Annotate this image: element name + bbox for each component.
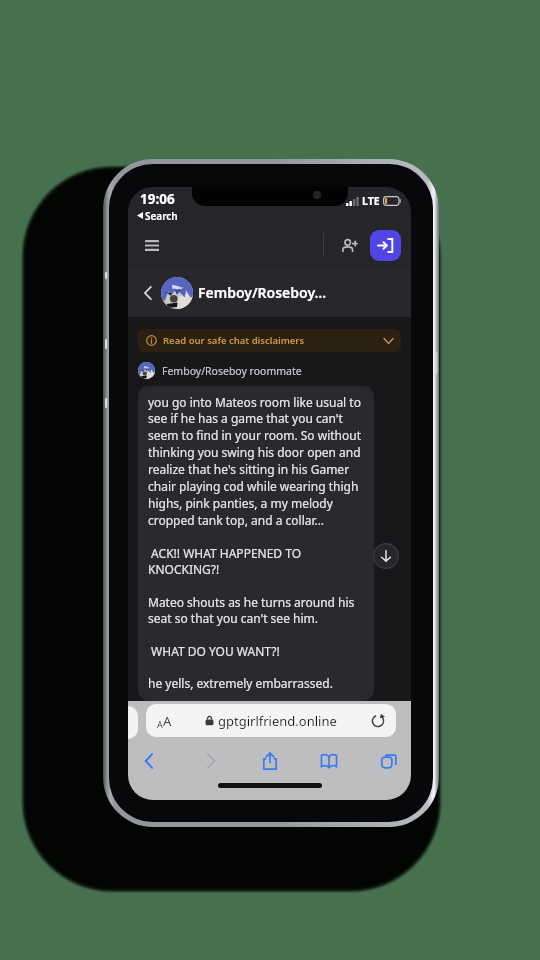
staticText: LTE <box>362 194 380 208</box>
staticText: Femboy/Roseboy… <box>198 283 327 302</box>
staticText: gptgirlfriend.online <box>218 712 337 730</box>
staticText: 19:06 <box>140 190 175 208</box>
button[interactable]: Back <box>137 282 159 304</box>
staticText: Mateo shouts as he turns around his seat… <box>148 594 364 627</box>
button[interactable]: Read our safe chat disclaimers <box>138 329 401 352</box>
button[interactable]: A <box>146 704 396 737</box>
button[interactable]: Back <box>136 747 164 775</box>
button[interactable]: Share <box>256 747 284 775</box>
button[interactable]: Menu <box>138 231 166 259</box>
button[interactable]: Bookmarks <box>315 747 343 775</box>
button[interactable]: Forward <box>196 747 224 775</box>
staticText: Search <box>145 209 178 222</box>
button[interactable]: Sign in <box>370 230 401 261</box>
staticText: A <box>163 712 172 730</box>
button[interactable]: Scroll to bottom <box>373 543 399 569</box>
staticText: Femboy/Roseboy roommate <box>162 364 302 378</box>
button[interactable]: Add person <box>337 233 361 257</box>
staticText: WHAT DO YOU WANT?! <box>148 643 280 659</box>
staticText: ACK!! WHAT HAPPENED TO KNOCKING?! <box>148 545 364 578</box>
staticText: A <box>157 718 163 730</box>
staticText: he yells, extremely embarrassed. <box>148 675 333 691</box>
button[interactable]: Tabs <box>375 747 403 775</box>
staticText: Read our safe chat disclaimers <box>163 334 305 347</box>
staticText: you go into Mateos room like usual to se… <box>148 394 364 529</box>
